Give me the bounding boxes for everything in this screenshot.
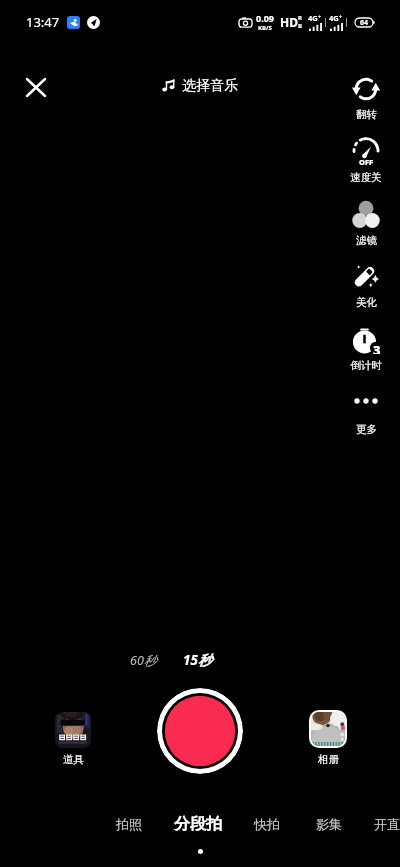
staticText: 速度关	[350, 171, 382, 184]
staticText: 美化	[356, 296, 377, 309]
staticText: 分段拍	[174, 814, 222, 834]
staticText: 64	[360, 18, 369, 27]
staticText: 更多	[356, 423, 377, 436]
button[interactable]: Record	[157, 688, 243, 774]
button[interactable]: 道具	[49, 712, 97, 766]
button[interactable]: More	[342, 389, 390, 436]
staticText: 道具	[63, 753, 84, 766]
staticText: +	[318, 13, 322, 20]
button[interactable]: Beautify	[342, 262, 390, 309]
button[interactable]: Flip camera	[342, 74, 390, 121]
staticText: 开直播	[374, 816, 400, 832]
staticText: +	[339, 13, 343, 20]
staticText: R	[298, 14, 302, 22]
staticText: 滤镜	[356, 234, 377, 247]
staticText: 倒计时	[350, 359, 382, 372]
button[interactable]: Speed	[342, 137, 390, 184]
button[interactable]: 开直播	[361, 812, 400, 836]
staticText: 60秒	[130, 652, 157, 669]
staticText: 选择音乐	[182, 77, 238, 95]
staticText: B	[298, 22, 302, 30]
button[interactable]: 影集	[305, 812, 353, 836]
staticText: 影集	[316, 816, 342, 832]
staticText: 4G	[329, 13, 339, 23]
button[interactable]: 60秒	[119, 649, 167, 671]
staticText: 0.09	[256, 12, 274, 24]
staticText: 13:47	[26, 13, 60, 31]
staticText: 15秒	[183, 651, 212, 669]
button[interactable]: 拍照	[105, 812, 153, 836]
button[interactable]: 快拍	[243, 812, 291, 836]
staticText: 拍照	[116, 816, 142, 832]
staticText: 4G	[308, 13, 318, 23]
button[interactable]: Filter	[342, 200, 390, 247]
button[interactable]: Close	[14, 65, 58, 109]
staticText: 相册	[318, 753, 339, 766]
staticText: 3	[373, 341, 381, 354]
button[interactable]: 分段拍	[166, 812, 230, 836]
button[interactable]: 选择音乐	[152, 74, 248, 98]
staticText: HD	[280, 14, 298, 30]
button[interactable]: 相册	[304, 710, 352, 766]
button[interactable]: 15秒	[173, 648, 221, 672]
staticText: OFF	[359, 157, 374, 167]
button[interactable]: Countdown	[342, 325, 390, 372]
staticText: KB/S	[258, 24, 272, 32]
staticText: 翻转	[356, 108, 377, 121]
staticText: 快拍	[254, 816, 280, 832]
